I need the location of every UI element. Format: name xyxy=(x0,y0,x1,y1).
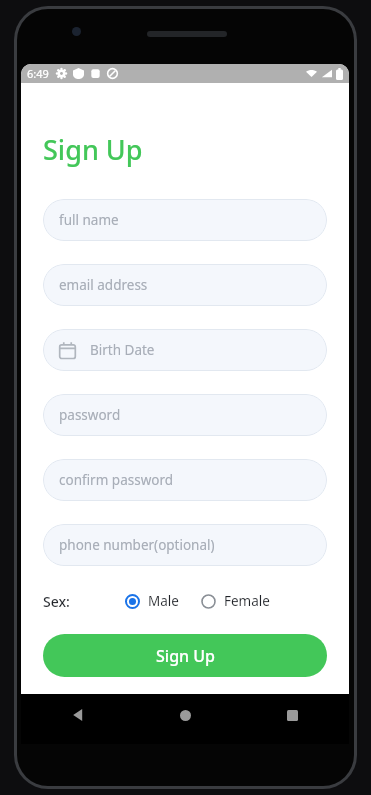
staticText: phone number(optional) xyxy=(59,536,215,554)
staticText: Sex: xyxy=(43,592,70,611)
staticText: full name xyxy=(59,211,119,229)
staticText: Sign Up xyxy=(156,645,215,667)
button[interactable]: email address xyxy=(43,264,327,306)
button[interactable]: Home xyxy=(172,702,198,728)
staticText: Female xyxy=(224,592,270,610)
button[interactable]: Female xyxy=(201,590,270,612)
staticText: Sign Up xyxy=(43,131,143,168)
staticText: password xyxy=(59,406,121,424)
staticText: 6:49 xyxy=(27,66,49,81)
button[interactable]: Sign Up xyxy=(43,634,327,677)
button[interactable]: Back xyxy=(65,702,91,728)
staticText: email address xyxy=(59,276,148,294)
button[interactable]: phone number(optional) xyxy=(43,524,327,566)
staticText: Male xyxy=(148,592,179,610)
staticText: Birth Date xyxy=(90,341,155,359)
button[interactable]: Recent apps xyxy=(279,702,305,728)
staticText: confirm password xyxy=(59,471,174,489)
button[interactable]: password xyxy=(43,394,327,436)
button[interactable]: Birth Date xyxy=(43,329,327,371)
button[interactable]: confirm password xyxy=(43,459,327,501)
button[interactable]: full name xyxy=(43,199,327,241)
button[interactable]: Male xyxy=(125,590,179,612)
